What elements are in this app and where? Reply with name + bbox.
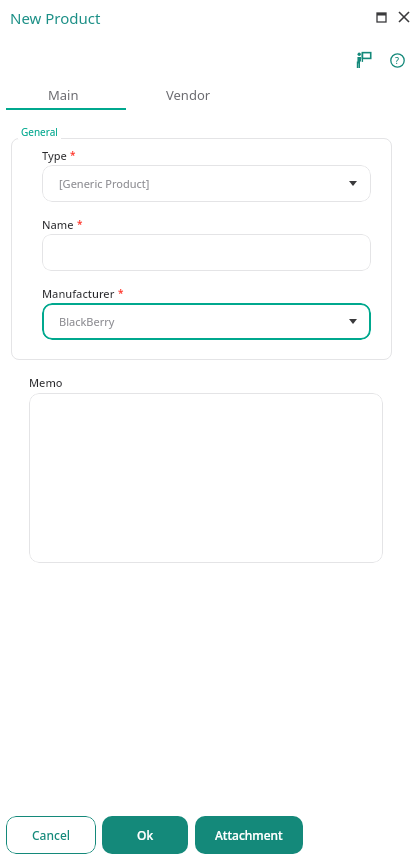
staticText: Memo [29, 375, 63, 390]
staticText: ? [395, 54, 400, 66]
button[interactable]: Ok [102, 816, 188, 854]
staticText: General [21, 125, 58, 139]
button[interactable]: Attachment [195, 816, 303, 854]
button[interactable]: Maximize [370, 6, 392, 28]
staticText: Cancel [32, 827, 71, 843]
staticText: Vendor [166, 86, 211, 104]
staticText: Ok [137, 827, 154, 843]
button[interactable]: Vendor [126, 80, 250, 110]
button[interactable]: Main [0, 80, 126, 110]
staticText: Attachment [215, 827, 283, 843]
button[interactable]: BlackBerry [42, 303, 371, 340]
button[interactable]: Close [393, 6, 415, 28]
button[interactable]: Assign [352, 48, 376, 72]
staticText: BlackBerry [59, 314, 115, 329]
button[interactable]: [Generic Product] [42, 165, 371, 202]
staticText: New Product [10, 8, 101, 28]
button[interactable]: Cancel [6, 816, 96, 854]
staticText: Main [48, 86, 79, 104]
button[interactable] [42, 234, 371, 271]
staticText: * [77, 217, 83, 231]
staticText: Manufacturer [42, 286, 115, 301]
staticText: * [70, 148, 76, 162]
button[interactable]: Help [385, 48, 409, 72]
staticText: Type [42, 148, 67, 163]
staticText: Name [42, 217, 74, 232]
button[interactable] [29, 393, 383, 563]
staticText: [Generic Product] [59, 176, 150, 191]
staticText: * [118, 286, 124, 300]
